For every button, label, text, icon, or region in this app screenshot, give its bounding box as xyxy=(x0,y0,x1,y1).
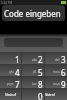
staticText: 6 xyxy=(61,67,66,76)
staticText: 1 xyxy=(15,54,20,64)
button[interactable]: ghi xyxy=(0,65,21,76)
staticText: jkl xyxy=(33,70,37,74)
staticText: mno xyxy=(53,70,60,74)
button[interactable]: Notruf anrufen xyxy=(45,89,67,100)
button[interactable]: 1 xyxy=(0,52,21,64)
button[interactable]: mno xyxy=(45,65,67,76)
staticText: 4 xyxy=(15,67,20,76)
staticText: ghi xyxy=(9,70,14,74)
button[interactable]: def xyxy=(45,52,67,64)
staticText: Code eingeben xyxy=(4,8,61,19)
staticText: Notruf xyxy=(5,92,16,97)
button[interactable]: wxyz xyxy=(45,77,67,88)
staticText: 8 xyxy=(38,79,43,88)
button[interactable]: 0 xyxy=(22,89,44,100)
staticText: pqrs xyxy=(7,82,14,86)
button[interactable]: Notruf xyxy=(0,89,21,100)
button[interactable]: abc xyxy=(22,52,44,64)
button[interactable]: tuv xyxy=(22,77,44,88)
staticText: 2 xyxy=(38,54,43,64)
button[interactable]: pqrs xyxy=(0,77,21,88)
staticText: def xyxy=(55,58,60,62)
staticText: 5 xyxy=(38,67,43,76)
button[interactable] xyxy=(4,38,63,47)
button[interactable]: jkl xyxy=(22,65,44,76)
staticText: wxyz xyxy=(53,82,60,86)
staticText: 5:34 PM xyxy=(1,1,13,5)
staticText: 7 xyxy=(15,79,20,88)
staticText: abc xyxy=(32,58,37,62)
staticText: 0 xyxy=(38,91,43,100)
staticText: tuv xyxy=(32,82,37,86)
staticText: 3 xyxy=(61,54,66,64)
staticText: Notruf anrufen xyxy=(45,93,67,97)
staticText: 9 xyxy=(61,79,66,88)
